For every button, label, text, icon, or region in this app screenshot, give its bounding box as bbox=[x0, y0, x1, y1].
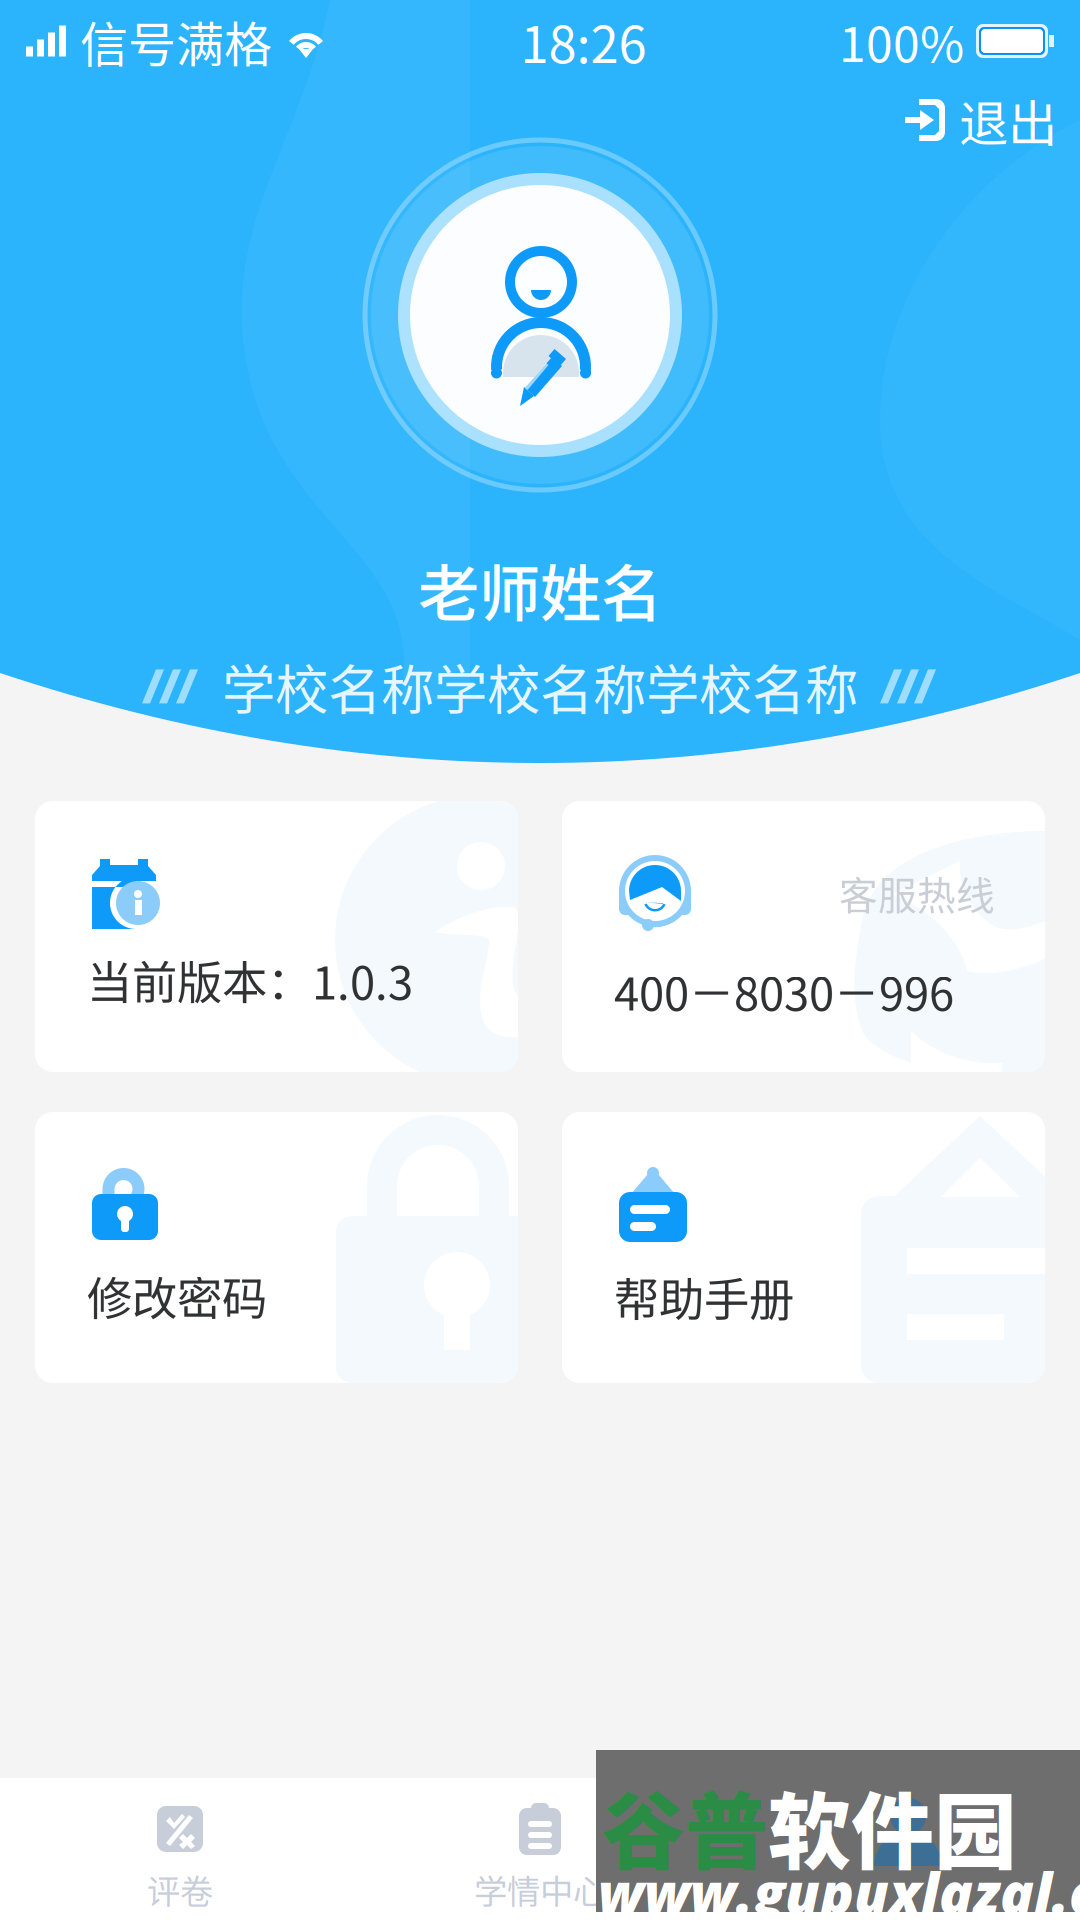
button[interactable]: 评卷 bbox=[0, 1778, 360, 1920]
staticText: 评卷 bbox=[147, 1865, 213, 1913]
staticText: 帮助手册 bbox=[614, 1264, 794, 1330]
staticText: 100% bbox=[839, 6, 964, 76]
button[interactable]: 我的 bbox=[720, 1778, 1080, 1920]
button[interactable]: 修改密码 bbox=[35, 1112, 518, 1383]
staticText: 客服热线 bbox=[839, 865, 995, 921]
staticText: 我的 bbox=[867, 1865, 933, 1913]
button[interactable]: 退出 bbox=[887, 76, 1080, 164]
button[interactable]: 学情中心 bbox=[360, 1778, 720, 1920]
staticText: 18:26 bbox=[520, 4, 646, 78]
staticText: 谷普 bbox=[602, 1766, 768, 1886]
staticText: 信号满格 bbox=[80, 6, 272, 76]
staticText: 400－8030－996 bbox=[614, 958, 954, 1024]
button[interactable]: 当前版本：1.0.3 bbox=[35, 801, 518, 1072]
staticText: 退出 bbox=[959, 84, 1057, 156]
button[interactable]: 帮助手册 bbox=[562, 1112, 1045, 1383]
button[interactable]: 客服热线 bbox=[562, 801, 1045, 1072]
staticText: 学情中心 bbox=[474, 1865, 606, 1913]
staticText: 软件园 bbox=[768, 1766, 1017, 1886]
staticText: 老师姓名 bbox=[418, 545, 662, 634]
staticText: 修改密码 bbox=[87, 1263, 267, 1329]
staticText: www.gupuxlazal.com bbox=[598, 1854, 1080, 1920]
staticText: 学校名称学校名称学校名称 bbox=[222, 648, 858, 725]
staticText: 当前版本：1.0.3 bbox=[87, 947, 413, 1013]
